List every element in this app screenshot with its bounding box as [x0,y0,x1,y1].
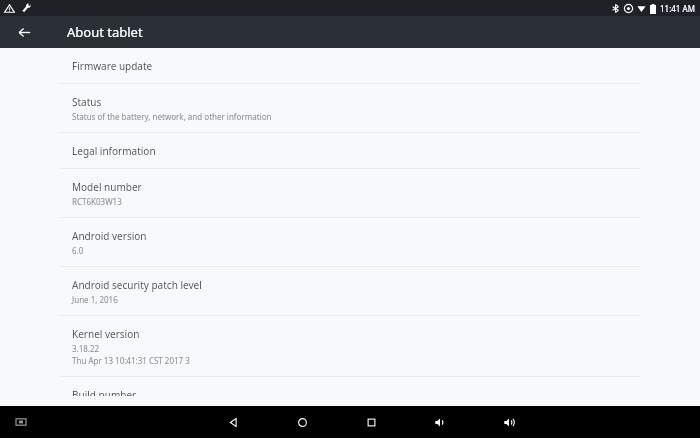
staticText: About tablet [67,23,143,41]
button[interactable]: Legal information [0,133,700,169]
button[interactable]: Recent apps [358,406,384,438]
staticText: 11:41 AM [660,3,695,14]
staticText: RCT6K03W13 [72,196,122,207]
staticText: Firmware update [72,59,153,73]
staticText: Model number [72,180,142,194]
staticText: Status [72,95,102,109]
staticText: Kernel version [72,327,140,341]
button[interactable]: Firmware update [0,48,700,84]
button[interactable]: Status [0,84,700,133]
button[interactable]: Kernel version [0,316,700,377]
button[interactable]: Volume down [427,406,453,438]
button[interactable]: Back [0,16,48,48]
button[interactable]: Home [289,406,315,438]
staticText: 6.0 [72,245,84,256]
staticText: Thu Apr 13 10:41:31 CST 2017 3 [72,355,190,366]
button[interactable]: Model number [0,169,700,218]
button[interactable]: Android version [0,218,700,267]
staticText: Android version [72,229,147,243]
button[interactable]: Screenshot [14,415,28,429]
button[interactable]: Volume up [496,406,522,438]
staticText: Status of the battery, network, and othe… [72,111,272,122]
button[interactable]: Back [220,406,246,438]
staticText: Legal information [72,144,156,158]
button[interactable]: Android security patch level [0,267,700,316]
button[interactable]: Build number [0,377,700,406]
staticText: Android security patch level [72,278,202,292]
staticText: Build number [72,388,137,396]
staticText: 3.18.22 [72,343,100,354]
staticText: June 1, 2016 [72,294,118,305]
